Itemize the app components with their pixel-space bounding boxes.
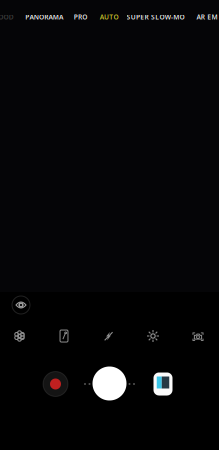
- staticText: AR EM: [196, 13, 217, 21]
- staticText: SUPER SLOW-MO: [126, 13, 184, 21]
- button[interactable]: Record video: [39, 368, 71, 400]
- button[interactable]: Live focus: [49, 323, 79, 349]
- button[interactable]: Scene detection: [183, 323, 213, 349]
- button[interactable]: AR EM: [191, 5, 219, 29]
- staticText: OOD: [0, 13, 14, 21]
- button[interactable]: Take picture: [87, 361, 131, 405]
- button[interactable]: Effects: [138, 323, 168, 349]
- button[interactable]: PANORAMA: [20, 5, 68, 29]
- staticText: PRO: [74, 13, 87, 21]
- button[interactable]: PRO: [69, 5, 92, 29]
- button[interactable]: Scene optimizer: [8, 292, 34, 318]
- button[interactable]: AUTO: [95, 5, 123, 29]
- button[interactable]: OOD: [0, 5, 19, 29]
- button[interactable]: Gallery: [148, 369, 178, 399]
- button[interactable]: Settings: [4, 323, 34, 349]
- button[interactable]: SUPER SLOW-MO: [121, 5, 189, 29]
- button[interactable]: Flash off: [93, 323, 123, 349]
- staticText: AUTO: [100, 13, 118, 21]
- staticText: PANORAMA: [25, 13, 63, 21]
